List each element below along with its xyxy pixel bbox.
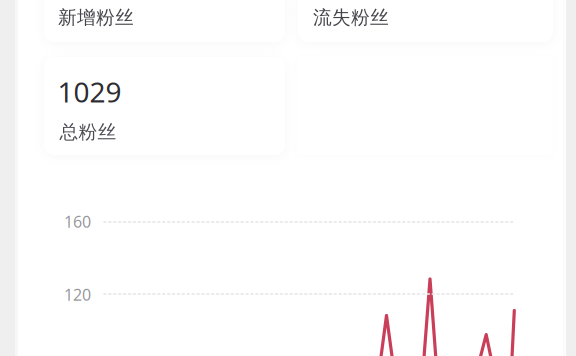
staticText: 新增粉丝 <box>58 6 134 29</box>
staticText: 160 <box>64 211 91 232</box>
button[interactable]: 1029 <box>44 57 285 155</box>
staticText: 120 <box>64 284 91 305</box>
button[interactable]: 新增粉丝 <box>44 0 285 42</box>
staticText: 总粉丝 <box>59 121 116 144</box>
staticText: 1029 <box>57 73 121 110</box>
staticText: 流失粉丝 <box>313 6 389 29</box>
button[interactable]: 流失粉丝 <box>298 0 553 42</box>
